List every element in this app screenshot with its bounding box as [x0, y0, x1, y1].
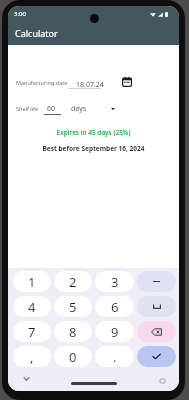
staticText: 0 [69, 348, 77, 366]
button[interactable]: 1 [13, 271, 51, 292]
button[interactable]: 4 [13, 296, 51, 317]
button[interactable]: Units dropdown [107, 103, 118, 114]
button[interactable]: 0 [54, 346, 92, 367]
staticText: , [30, 348, 34, 366]
staticText: 60 [47, 104, 56, 114]
button[interactable]: 8 [54, 321, 92, 342]
button[interactable]: Pick date [121, 76, 133, 88]
button[interactable] [137, 271, 176, 292]
button[interactable] [137, 321, 176, 342]
button[interactable]: Hide keyboard [20, 373, 32, 385]
button[interactable]: 9 [95, 321, 134, 342]
staticText: . [113, 348, 117, 366]
staticText: 9 [111, 323, 119, 341]
button[interactable]: , [13, 346, 51, 367]
staticText: 4 [28, 298, 36, 316]
staticText: 5 [69, 298, 77, 316]
button[interactable]: 2 [54, 271, 92, 292]
button[interactable]: Switch keyboard [156, 375, 168, 387]
staticText: 3:00 [14, 10, 26, 18]
staticText: 2 [69, 273, 77, 291]
button[interactable]: 3 [95, 271, 134, 292]
button[interactable]: 5 [54, 296, 92, 317]
staticText: 18.07.24 [76, 80, 104, 90]
staticText: 3 [111, 273, 119, 291]
staticText: Shelf life [16, 105, 39, 112]
staticText: 6 [111, 298, 119, 316]
button[interactable]: 6 [95, 296, 134, 317]
button[interactable]: . [95, 346, 134, 367]
staticText: 7 [28, 323, 36, 341]
staticText: Best before September 16, 2024 [8, 144, 179, 153]
button[interactable] [137, 346, 176, 367]
staticText: 8 [69, 323, 77, 341]
staticText: Calculator [15, 27, 58, 39]
staticText: Expires in 45 days (25%) [8, 128, 179, 137]
staticText: 1 [28, 273, 36, 291]
staticText: days [71, 104, 87, 114]
button[interactable]: 7 [13, 321, 51, 342]
button[interactable] [137, 296, 176, 317]
staticText: Manufacturing date [16, 79, 68, 86]
